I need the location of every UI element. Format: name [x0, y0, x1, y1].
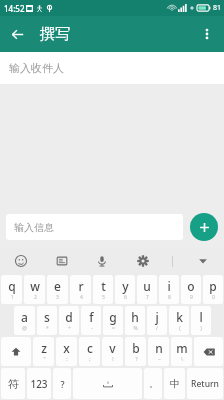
- staticText: n: [155, 340, 163, 356]
- staticText: *: [46, 325, 49, 332]
- button[interactable]: 输入收件人: [0, 52, 224, 84]
- button[interactable]: Shift: [1, 337, 31, 366]
- button[interactable]: w: [24, 275, 45, 304]
- button[interactable]: c: [79, 337, 100, 366]
- button[interactable]: y: [115, 275, 135, 304]
- staticText: r: [78, 278, 84, 294]
- button[interactable]: d: [59, 306, 79, 335]
- button[interactable]: Delete: [194, 337, 223, 366]
- staticText: u: [143, 278, 151, 294]
- button[interactable]: s: [37, 306, 57, 335]
- staticText: 4: [80, 294, 83, 301]
- staticText: h: [131, 309, 139, 325]
- staticText: y: [122, 278, 129, 294]
- button[interactable]: Emoji: [10, 250, 32, 272]
- staticText: c: [87, 340, 93, 356]
- staticText: 14:52: [4, 3, 25, 14]
- staticText: b: [132, 340, 140, 356]
- button[interactable]: 。: [144, 368, 162, 399]
- button[interactable]: t: [93, 275, 113, 304]
- staticText: l: [199, 309, 203, 325]
- staticText: 7: [146, 294, 149, 301]
- button[interactable]: u: [137, 275, 157, 304]
- staticText: ~: [158, 356, 161, 363]
- button[interactable]: Space: [73, 368, 142, 399]
- staticText: 中: [170, 377, 180, 390]
- staticText: \: [181, 356, 183, 363]
- staticText: z: [41, 340, 47, 356]
- staticText: g: [109, 309, 117, 325]
- staticText: +: [68, 325, 71, 332]
- button[interactable]: k: [169, 306, 189, 335]
- staticText: 8: [168, 294, 171, 301]
- staticText: =: [112, 325, 115, 332]
- staticText: 123: [30, 377, 48, 391]
- staticText: 6: [124, 294, 127, 301]
- button[interactable]: o: [181, 275, 201, 304]
- staticText: v: [109, 340, 116, 356]
- staticText: @: [22, 325, 27, 332]
- button[interactable]: More options: [190, 17, 224, 51]
- staticText: x: [63, 340, 70, 356]
- staticText: 9: [190, 294, 193, 301]
- staticText: w: [30, 278, 40, 294]
- staticText: i: [167, 278, 171, 294]
- staticText: 0: [212, 294, 215, 301]
- staticText: ?: [60, 378, 65, 390]
- staticText: 2: [34, 294, 37, 301]
- button[interactable]: z: [33, 337, 54, 366]
- staticText: s: [44, 309, 50, 325]
- staticText: j: [155, 309, 159, 325]
- staticText: Return: [191, 378, 219, 390]
- button[interactable]: q: [1, 275, 22, 304]
- button[interactable]: v: [102, 337, 123, 366]
- staticText: f: [89, 309, 94, 325]
- button[interactable]: Settings: [132, 250, 154, 272]
- staticText: d: [65, 309, 73, 325]
- staticText: 5: [102, 294, 105, 301]
- button[interactable]: 中: [164, 368, 185, 399]
- staticText: m: [176, 340, 188, 356]
- button[interactable]: g: [103, 306, 123, 335]
- button[interactable]: Send attachment: [190, 213, 218, 241]
- button[interactable]: m: [171, 337, 192, 366]
- button[interactable]: j: [147, 306, 167, 335]
- button[interactable]: b: [125, 337, 146, 366]
- button[interactable]: f: [81, 306, 101, 335]
- staticText: ;: [89, 356, 91, 363]
- staticText: o: [187, 278, 195, 294]
- staticText: 3: [56, 294, 59, 301]
- button[interactable]: r: [70, 275, 91, 304]
- button[interactable]: Return: [187, 368, 223, 399]
- staticText: q: [8, 278, 16, 294]
- staticText: %: [133, 325, 138, 332]
- staticText: 1: [11, 294, 14, 301]
- staticText: 。: [149, 378, 158, 389]
- button[interactable]: n: [148, 337, 169, 366]
- staticText: :: [66, 356, 68, 363]
- staticText: /: [156, 325, 158, 332]
- button[interactable]: 符: [1, 368, 25, 399]
- staticText: k: [176, 309, 183, 325]
- button[interactable]: p: [203, 275, 223, 304]
- button[interactable]: l: [191, 306, 211, 335]
- staticText: 81: [213, 3, 222, 13]
- button[interactable]: a: [14, 306, 35, 335]
- button[interactable]: x: [56, 337, 77, 366]
- button[interactable]: ?: [53, 368, 71, 399]
- staticText: e: [54, 278, 61, 294]
- button[interactable]: e: [47, 275, 68, 304]
- staticText: !: [112, 356, 114, 363]
- button[interactable]: 123: [27, 368, 51, 399]
- button[interactable]: Back: [0, 17, 34, 51]
- button[interactable]: Clipboard: [51, 250, 73, 272]
- button[interactable]: h: [125, 306, 145, 335]
- staticText: (: [179, 325, 181, 332]
- button[interactable]: Voice input: [91, 250, 113, 272]
- staticText: p: [209, 278, 217, 294]
- button[interactable]: Hide keyboard: [192, 250, 214, 272]
- staticText: 符: [8, 377, 19, 391]
- button[interactable]: 输入信息: [6, 214, 183, 240]
- button[interactable]: i: [159, 275, 179, 304]
- staticText: ?: [135, 356, 138, 363]
